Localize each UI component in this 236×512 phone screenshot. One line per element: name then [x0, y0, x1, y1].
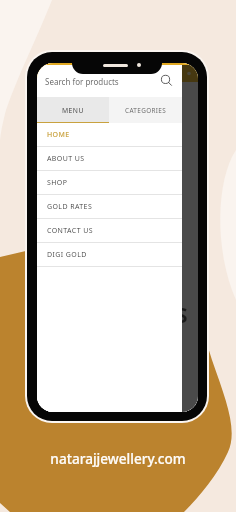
button[interactable]: ABOUT US: [37, 147, 182, 171]
button[interactable]: DIGI GOLD: [37, 243, 182, 267]
button[interactable]: SHOP: [37, 171, 182, 195]
staticText: HOME: [47, 130, 70, 140]
staticText: CATEGORIES: [125, 106, 167, 115]
staticText: S: [176, 301, 188, 330]
button[interactable]: HOME: [37, 123, 182, 147]
staticText: GOLD RATES: [47, 202, 93, 212]
staticText: DIGI GOLD: [47, 250, 87, 260]
button[interactable]: GOLD RATES: [37, 195, 182, 219]
button[interactable]: CONTACT US: [37, 219, 182, 243]
staticText: ABOUT US: [47, 154, 85, 164]
staticText: CONTACT US: [47, 226, 93, 236]
button[interactable]: CATEGORIES: [109, 97, 182, 123]
button[interactable]: Search: [158, 73, 174, 89]
staticText: natarajjewellery.com: [0, 449, 236, 468]
staticText: MENU: [62, 106, 84, 115]
staticText: Search for products: [45, 76, 119, 87]
button[interactable]: MENU: [37, 97, 109, 123]
staticText: SHOP: [47, 178, 68, 188]
